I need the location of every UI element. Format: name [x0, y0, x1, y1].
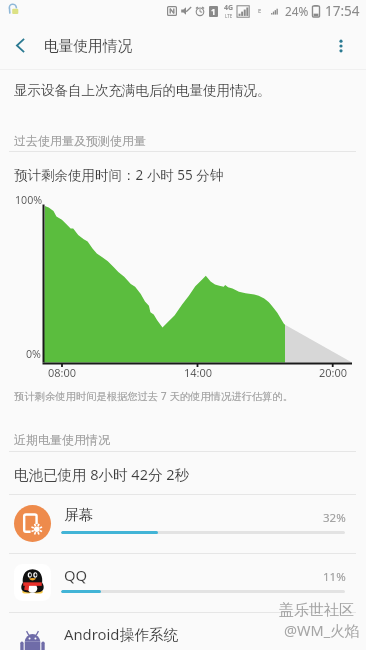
staticText: 4G	[224, 3, 234, 13]
staticText: 盖乐世社区	[279, 601, 354, 620]
staticText: 20:00	[319, 365, 348, 380]
staticText: @WM_火焰	[284, 620, 360, 640]
staticText: 屏幕	[64, 506, 94, 525]
staticText: 14:00	[184, 365, 213, 380]
staticText: Android操作系统	[64, 624, 179, 644]
staticText: 100%	[15, 193, 43, 208]
staticText: 32%	[323, 510, 346, 526]
staticText: 08:00	[48, 365, 77, 380]
staticText: 24%	[285, 3, 309, 19]
staticText: QQ	[64, 565, 88, 585]
staticText: 近期电量使用情况	[14, 432, 110, 447]
staticText: 1	[211, 6, 216, 17]
button[interactable]: Back	[3, 28, 37, 62]
staticText: 预计剩余使用时间：2 小时 55 分钟	[14, 166, 224, 184]
button[interactable]: More options	[324, 29, 358, 63]
staticText: 17:54	[325, 2, 360, 20]
staticText: LTE	[225, 13, 233, 19]
staticText: 0%	[26, 347, 41, 362]
staticText: 预计剩余使用时间是根据您过去 7 天的使用情况进行估算的。	[14, 389, 293, 403]
button[interactable]: QQ	[0, 553, 366, 612]
staticText: 过去使用量及预测使用量	[14, 133, 146, 148]
staticText: 显示设备自上次充满电后的电量使用情况。	[14, 82, 271, 99]
staticText: 11%	[323, 569, 346, 585]
staticText: 电池已使用 8小时 42分 2秒	[14, 464, 189, 484]
staticText: E	[258, 7, 262, 15]
button[interactable]: 屏幕	[0, 494, 366, 553]
button[interactable]: Android操作系统	[0, 612, 366, 650]
staticText: 电量使用情况	[44, 37, 133, 56]
